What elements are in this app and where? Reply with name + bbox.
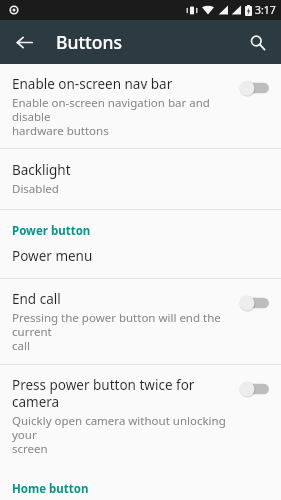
button[interactable]: Back [7, 25, 41, 59]
staticText: Home button [12, 481, 89, 497]
button[interactable]: Toggle Press power button twice for came… [237, 379, 271, 399]
staticText: Power menu [12, 247, 93, 265]
staticText: Pressing the power button will end the c… [12, 310, 231, 353]
button[interactable]: Backlight [0, 149, 281, 209]
button[interactable]: Search [240, 25, 274, 59]
staticText: End call [12, 290, 61, 308]
staticText: Power button [12, 223, 91, 239]
button[interactable]: End call [0, 279, 281, 364]
button[interactable]: Toggle Enable on-screen nav bar [237, 78, 271, 98]
staticText: Enable on-screen navigation bar and disa… [12, 95, 231, 138]
button[interactable]: Enable on-screen nav bar [0, 64, 281, 148]
staticText: Buttons [56, 30, 122, 54]
staticText: Disabled [12, 181, 59, 197]
staticText: Press power button twice for camera [12, 376, 231, 411]
staticText: Enable on-screen nav bar [12, 75, 173, 93]
staticText: Backlight [12, 161, 71, 179]
button[interactable]: Power menu [0, 242, 281, 278]
staticText: 3:17 [255, 3, 276, 17]
button[interactable]: Toggle End call [237, 293, 271, 313]
button[interactable]: Press power button twice for camera [0, 365, 281, 467]
staticText: Quickly open camera without unlocking yo… [12, 413, 231, 456]
